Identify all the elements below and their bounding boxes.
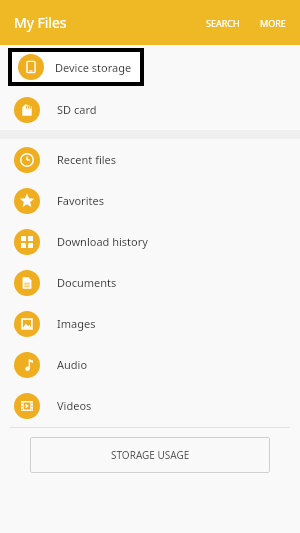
button[interactable]: SD card xyxy=(0,89,300,130)
button[interactable]: SEARCH xyxy=(200,9,246,37)
staticText: STORAGE USAGE xyxy=(111,448,190,462)
staticText: Favorites xyxy=(57,193,104,208)
staticText: SEARCH xyxy=(206,17,240,29)
button[interactable]: Device storage xyxy=(12,52,140,82)
staticText: Videos xyxy=(57,398,92,413)
button[interactable]: MORE xyxy=(254,9,292,37)
button[interactable]: Images xyxy=(0,303,300,344)
button[interactable]: Videos xyxy=(0,385,300,426)
button[interactable]: Recent files xyxy=(0,139,300,180)
button[interactable]: Download history xyxy=(0,221,300,262)
staticText: SD card xyxy=(57,102,97,117)
staticText: Documents xyxy=(57,275,117,290)
button[interactable]: Documents xyxy=(0,262,300,303)
staticText: My Files xyxy=(14,13,67,32)
staticText: Device storage xyxy=(55,60,132,75)
staticText: Audio xyxy=(57,357,88,372)
staticText: Images xyxy=(57,316,96,331)
staticText: Download history xyxy=(57,234,148,249)
staticText: MORE xyxy=(260,17,286,29)
staticText: Recent files xyxy=(57,152,117,167)
button[interactable]: Favorites xyxy=(0,180,300,221)
button[interactable]: STORAGE USAGE xyxy=(30,437,270,473)
button[interactable]: Audio xyxy=(0,344,300,385)
